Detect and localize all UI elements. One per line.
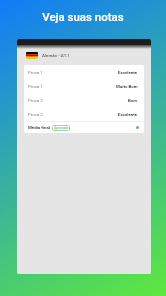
button[interactable]: Média final: [24, 122, 144, 133]
staticText: Prova 2: [28, 98, 43, 103]
other: Aprovado: [136, 126, 139, 129]
staticText: Veja suas notas: [0, 10, 166, 23]
staticText: Bom: [128, 98, 138, 103]
staticText: Prova 1: [28, 70, 43, 75]
button[interactable]: Prova 2: [24, 93, 144, 107]
button[interactable]: Aprovado: [52, 125, 70, 131]
button[interactable]: Prova 1: [24, 79, 144, 93]
button[interactable]: Prova 2: [24, 107, 144, 121]
staticText: Muito Bom: [116, 84, 138, 89]
button[interactable]: Prova 1: [24, 65, 144, 79]
staticText: Prova 1: [28, 84, 43, 89]
button[interactable]: Alemão - A1.1: [17, 45, 151, 66]
staticText: Alemão - A1.1: [42, 53, 70, 58]
staticText: Média final: [28, 125, 50, 130]
staticText: Aprovado: [54, 126, 69, 130]
staticText: Excelente: [118, 112, 138, 117]
staticText: Prova 2: [28, 112, 43, 117]
staticText: Excelente: [118, 70, 138, 75]
